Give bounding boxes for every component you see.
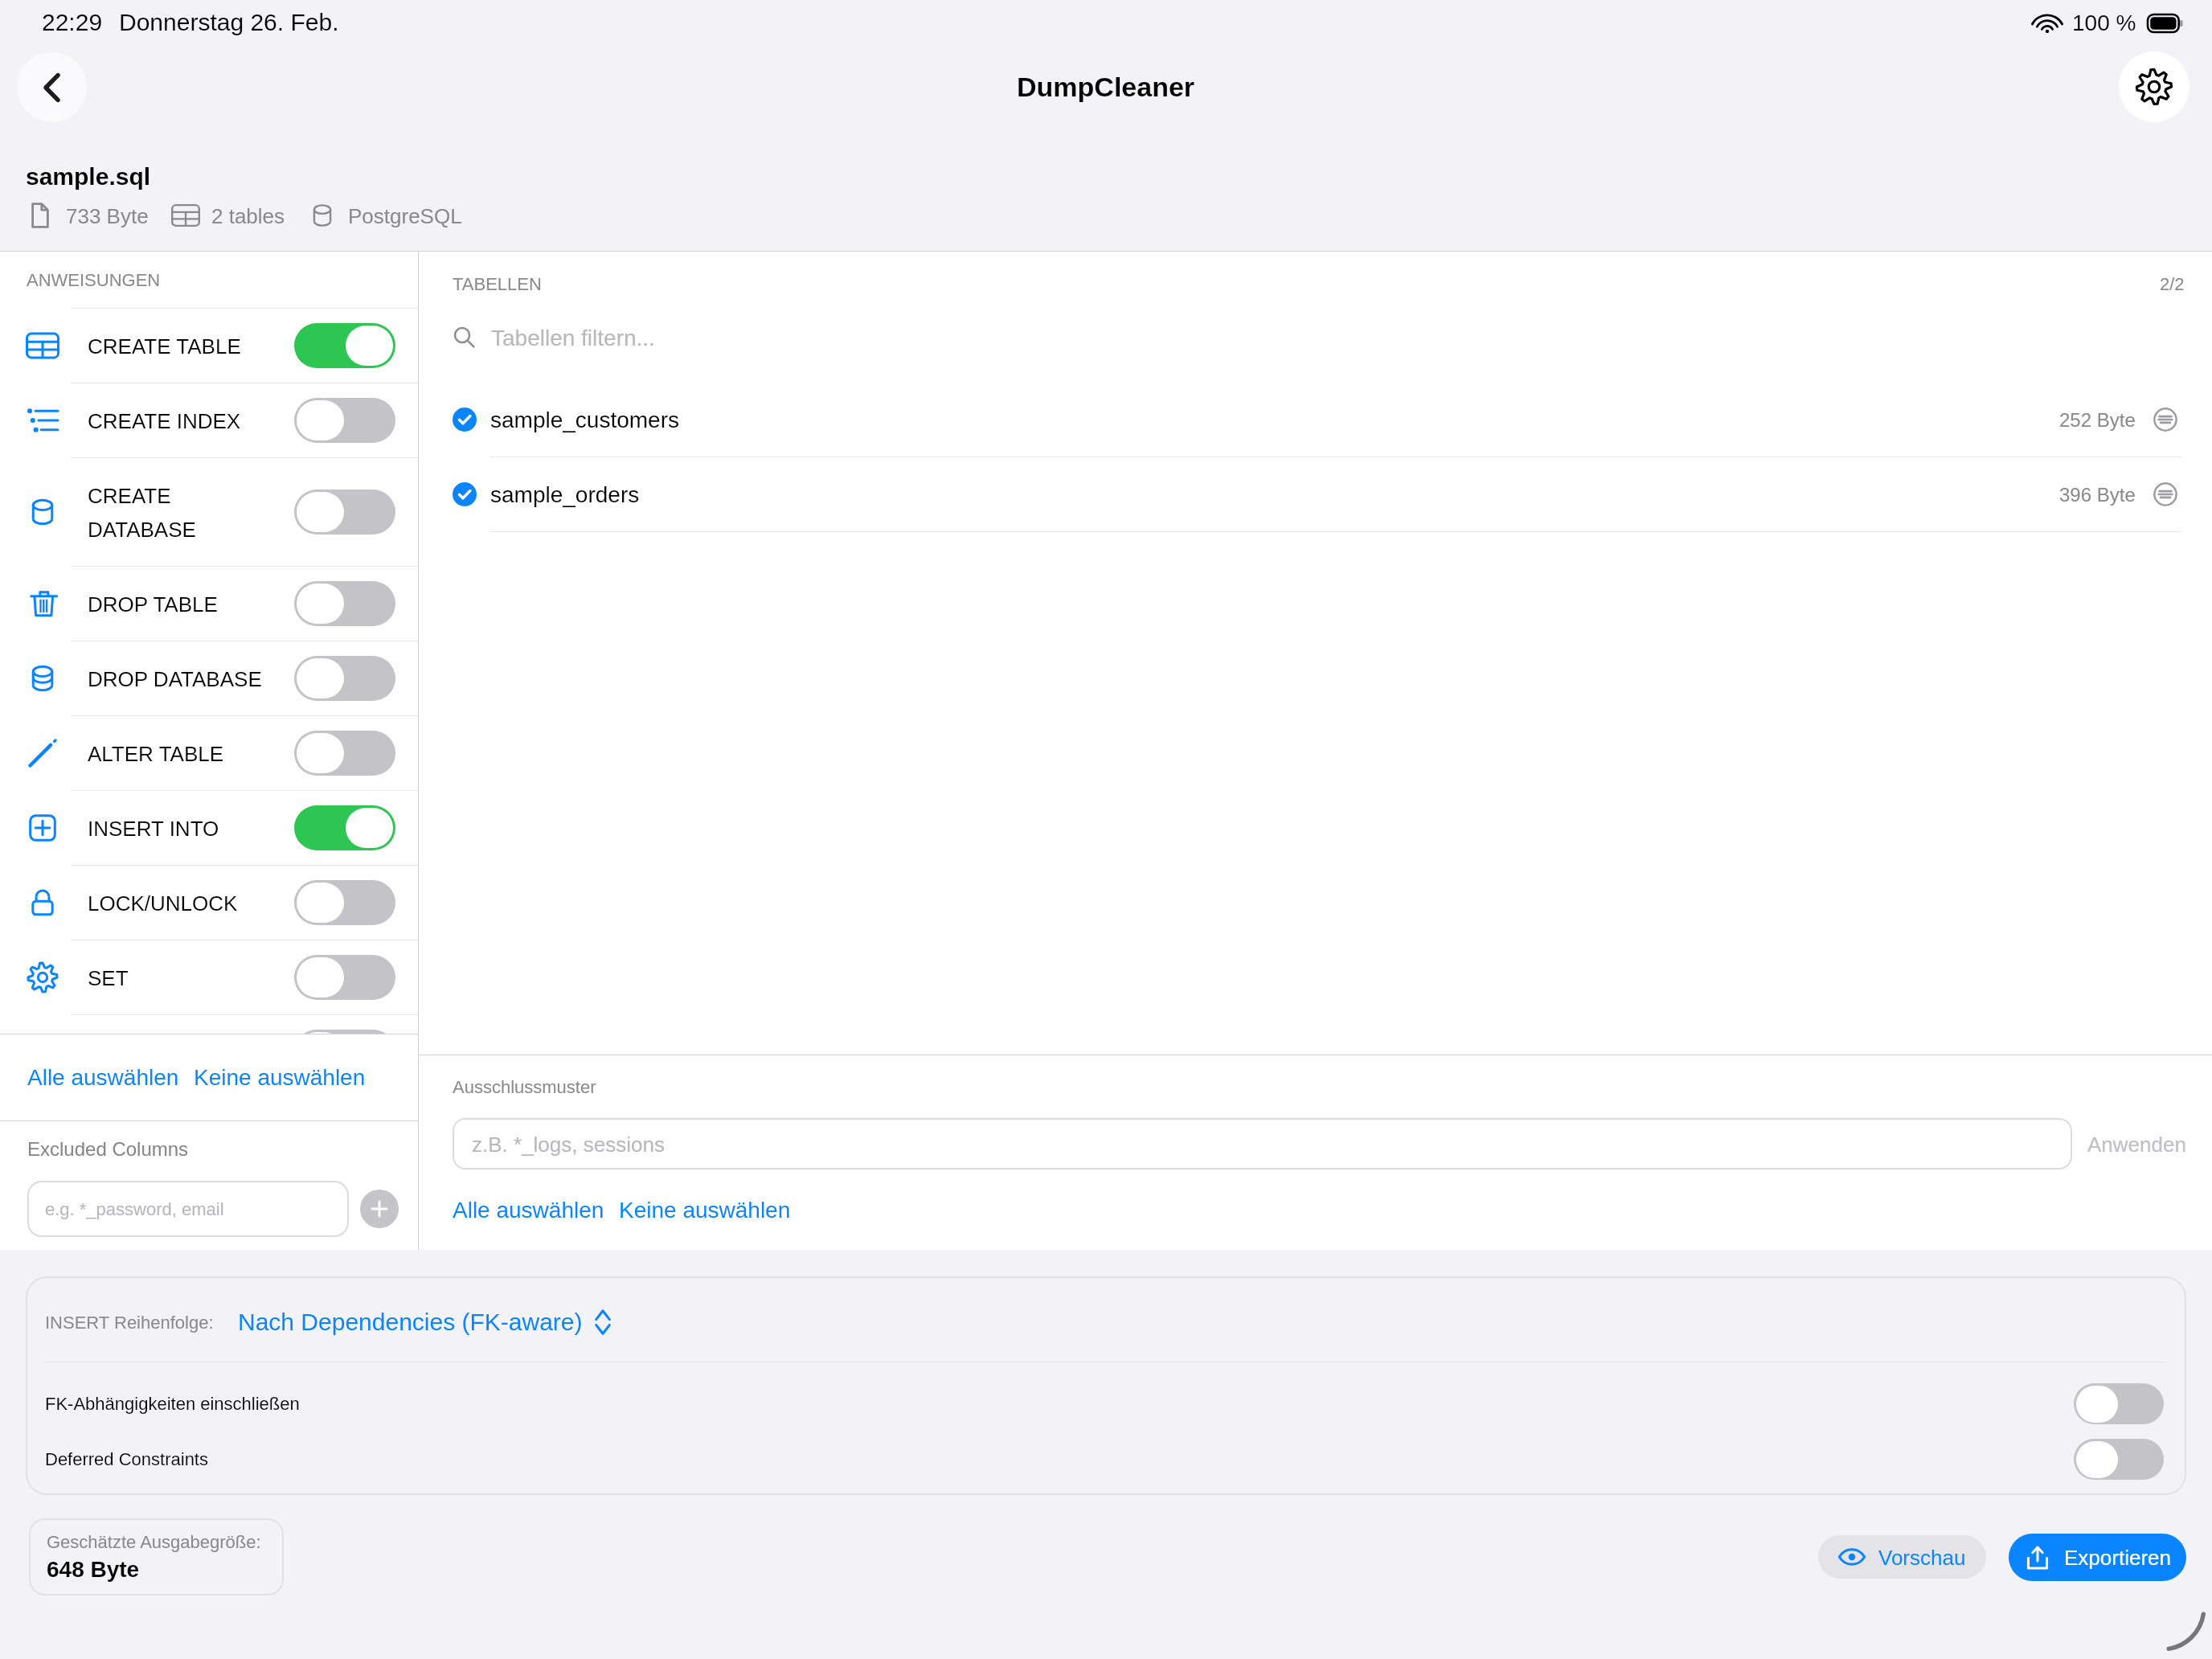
button[interactable]: Exportieren [2009, 1534, 2186, 1581]
staticText: INSERT Reihenfolge: [45, 1313, 214, 1333]
staticText: Tabellen filtern... [491, 326, 655, 350]
staticText: DROP DATABASE [88, 667, 262, 690]
button[interactable]: Back [17, 52, 87, 122]
staticText: INSERT INTO [88, 817, 219, 840]
button[interactable] [294, 398, 395, 443]
button[interactable] [294, 323, 395, 368]
button[interactable]: Table options [2153, 408, 2177, 432]
button[interactable]: Alle auswählen [453, 1198, 604, 1223]
button[interactable]: ALTER TABLE [0, 716, 418, 790]
staticText: DROP TABLE [88, 592, 218, 616]
button[interactable] [2074, 1383, 2164, 1424]
staticText: CREATE INDEX [88, 409, 241, 432]
button[interactable] [294, 1030, 395, 1034]
button[interactable]: INSERT INTO [0, 791, 418, 865]
button[interactable]: Settings [2119, 51, 2189, 122]
staticText: Keine auswählen [619, 1198, 791, 1223]
staticText: Deferred Constraints [45, 1449, 208, 1469]
button[interactable]: Tabellen filtern... [419, 316, 2212, 359]
staticText: TABELLEN [453, 274, 542, 294]
staticText: 2/2 [2160, 274, 2185, 294]
staticText: Donnerstag 26. Feb. [119, 9, 339, 36]
staticText: sample_orders [490, 482, 640, 507]
button[interactable]: Alle auswählen [27, 1065, 179, 1090]
staticText: Alle auswählen [453, 1198, 604, 1223]
button[interactable]: CREATE INDEX [0, 383, 418, 457]
button[interactable] [294, 731, 395, 776]
staticText: Geschätzte Ausgabegröße: [47, 1532, 261, 1552]
staticText: Vorschau [1878, 1546, 1966, 1569]
button[interactable]: e.g. *_password, email [27, 1181, 349, 1237]
staticText: z.B. *_logs, sessions [472, 1133, 665, 1156]
staticText: Nach Dependencies (FK-aware) [238, 1309, 583, 1336]
staticText: DumpCleaner [1017, 72, 1195, 102]
staticText: CREATE DATABASE [88, 484, 272, 541]
button[interactable] [294, 490, 395, 535]
staticText: 733 Byte [66, 204, 149, 227]
button[interactable]: SET [0, 940, 418, 1014]
button[interactable]: LOCK/UNLOCK [0, 866, 418, 940]
staticText: FK-Abhängigkeiten einschließen [45, 1394, 300, 1414]
button[interactable]: Anwenden [2072, 1133, 2186, 1156]
button[interactable]: Nach Dependencies (FK-aware) [238, 1309, 612, 1336]
staticText: 2 tables [211, 204, 285, 227]
button[interactable]: DROP DATABASE [0, 641, 418, 715]
staticText: sample.sql [26, 163, 151, 190]
staticText: ANWEISUNGEN [27, 270, 161, 290]
button[interactable]: DROP TABLE [0, 567, 418, 641]
button[interactable]: CREATE DATABASE [0, 458, 418, 566]
button[interactable]: CREATE TABLE [0, 309, 418, 383]
staticText: CREATE TABLE [88, 334, 241, 358]
staticText: PostgreSQL [348, 204, 462, 227]
button[interactable] [294, 955, 395, 1000]
button[interactable]: Table options [2153, 482, 2177, 506]
staticText: 252 Byte [2059, 409, 2136, 431]
button[interactable] [294, 805, 395, 850]
button[interactable]: sample_orders [453, 457, 2177, 531]
button[interactable] [2074, 1439, 2164, 1480]
staticText: 396 Byte [2059, 484, 2136, 506]
staticText: 100 % [2072, 10, 2136, 35]
button[interactable]: Keine auswählen [619, 1198, 791, 1223]
button[interactable]: z.B. *_logs, sessions [453, 1118, 2072, 1169]
staticText: ALTER TABLE [88, 742, 224, 765]
button[interactable] [294, 880, 395, 925]
staticText: SET [88, 966, 129, 989]
button[interactable] [294, 581, 395, 626]
button[interactable]: sample_customers [453, 383, 2177, 457]
staticText: sample_customers [490, 408, 679, 432]
staticText: e.g. *_password, email [45, 1199, 224, 1219]
staticText: 22:29 [42, 9, 103, 36]
staticText: Anwenden [2087, 1133, 2186, 1156]
staticText: LOCK/UNLOCK [88, 891, 238, 915]
button[interactable] [294, 656, 395, 701]
staticText: Ausschlussmuster [453, 1077, 596, 1097]
button[interactable]: Vorschau [1818, 1535, 1986, 1579]
staticText: Exportieren [2064, 1546, 2171, 1569]
staticText: Excluded Columns [27, 1138, 189, 1160]
button[interactable]: Add excluded column [360, 1190, 399, 1228]
staticText: Alle auswählen [27, 1065, 179, 1090]
button[interactable]: Keine auswählen [194, 1065, 366, 1090]
staticText: Keine auswählen [194, 1065, 366, 1090]
staticText: 648 Byte [47, 1557, 140, 1582]
button[interactable]: COMMENT [0, 1015, 418, 1034]
